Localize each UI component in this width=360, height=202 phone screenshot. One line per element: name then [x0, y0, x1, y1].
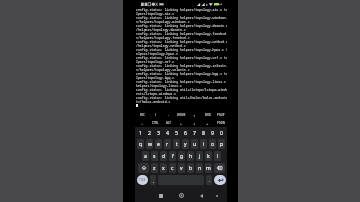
button[interactable]: c [169, 163, 176, 173]
staticText: d [162, 153, 166, 160]
staticText: config.status: linking helpers/topology-… [136, 48, 227, 52]
button[interactable]: o [209, 139, 216, 149]
staticText: PGDN [217, 121, 225, 125]
staticText: m [206, 165, 211, 172]
button[interactable]: ∼ [135, 119, 149, 127]
button[interactable]: 1 [136, 127, 145, 138]
staticText: . [209, 178, 210, 183]
staticText: config.status: linking helpers/topology-… [136, 8, 227, 12]
staticText: u [193, 141, 197, 148]
button[interactable] [138, 163, 149, 173]
button[interactable]: Home [176, 190, 187, 201]
staticText: config.status: linking helpers/topology-… [136, 32, 227, 36]
button[interactable]: ESC [135, 111, 149, 119]
button[interactable]: 2 [145, 127, 154, 138]
staticText: config.status: linking helpers/topology-… [136, 16, 227, 20]
button[interactable]: → [201, 119, 214, 127]
staticText: HOME [177, 113, 186, 117]
button[interactable]: PGDN [214, 119, 227, 127]
button[interactable]: y [182, 139, 189, 149]
button[interactable]: HOME [175, 111, 188, 119]
button[interactable]: ALT [162, 119, 175, 127]
staticText: CTRL [152, 121, 159, 125]
staticText: g [180, 153, 184, 160]
button[interactable]: 0 [217, 127, 226, 138]
staticText: s/helpers/topology-freebsd.c [136, 36, 190, 40]
button[interactable]: m [205, 163, 212, 173]
staticText: p [220, 141, 224, 148]
staticText: config.status: linking helpers/topology-… [136, 80, 227, 84]
button[interactable]: n [196, 163, 203, 173]
button[interactable]: d [160, 151, 167, 161]
staticText: ?123 [139, 178, 146, 182]
staticText: z [153, 165, 156, 172]
button[interactable]: q [137, 139, 144, 149]
button[interactable]: e [155, 139, 162, 149]
staticText: lpers/topology-aix.c [136, 12, 175, 16]
button[interactable]: ← [175, 119, 188, 127]
button[interactable]: Switch keyboard [211, 190, 222, 201]
staticText: 5 [175, 129, 178, 136]
button[interactable]: - [162, 111, 175, 119]
button[interactable]: PGUP [214, 111, 227, 119]
staticText: ↑ [193, 114, 196, 117]
staticText: 2 [148, 129, 151, 136]
button[interactable]: , [150, 175, 156, 185]
button[interactable]: f [169, 151, 176, 161]
staticText: s/helpers/topology-windows.c [136, 20, 190, 24]
button[interactable]: ?123 [137, 175, 148, 185]
staticText: 4 [166, 129, 169, 136]
button[interactable]: s [151, 151, 158, 161]
button[interactable]: Recents [155, 190, 166, 201]
button[interactable]: ↑ [188, 111, 201, 119]
staticText: y [184, 141, 187, 148]
staticText: lpers/topology-bgq.c [136, 76, 175, 80]
staticText: END [205, 113, 211, 117]
button[interactable]: p [218, 139, 225, 149]
button[interactable]: u [191, 139, 198, 149]
staticText: config.status: linking helpers/topology-… [136, 72, 227, 76]
button[interactable]: 6 [181, 127, 190, 138]
staticText: config.status: linking helpers/topology-… [136, 24, 227, 28]
button[interactable]: Back [196, 190, 207, 201]
button[interactable]: k [205, 151, 212, 161]
button[interactable]: l [214, 151, 221, 161]
button[interactable]: v [178, 163, 185, 173]
button[interactable]: . [206, 175, 212, 185]
button[interactable]: ↓ [188, 119, 201, 127]
staticText: w [148, 141, 152, 148]
button[interactable] [214, 163, 225, 173]
button[interactable]: 5 [172, 127, 181, 138]
staticText: helpers/topology-linux.c [136, 84, 182, 88]
staticText: /helpers/topology-darwin.c [136, 28, 186, 32]
button[interactable]: / [149, 111, 162, 119]
staticText: k [207, 153, 210, 160]
staticText: config.status: linking helpers/topology-… [136, 40, 227, 44]
button[interactable]: r [164, 139, 171, 149]
staticText: PGUP [217, 113, 225, 117]
button[interactable]: x [160, 163, 167, 173]
button[interactable]: z [151, 163, 158, 173]
button[interactable] [214, 175, 226, 185]
button[interactable]: END [201, 111, 214, 119]
button[interactable]: j [196, 151, 203, 161]
button[interactable]: 8 [199, 127, 208, 138]
button[interactable]: w [146, 139, 153, 149]
staticText: /helpers/topology-netbsd.c [136, 44, 186, 48]
button[interactable]: i [200, 139, 207, 149]
button[interactable]: 4 [163, 127, 172, 138]
button[interactable]: a [142, 151, 149, 161]
button[interactable]: 3 [154, 127, 163, 138]
staticText: ests/lstopo-windows.c [136, 92, 177, 96]
button[interactable]: t [173, 139, 180, 149]
button[interactable]: 9 [208, 127, 217, 138]
button[interactable]: b [187, 163, 194, 173]
button[interactable]: g [178, 151, 185, 161]
button[interactable]: h [187, 151, 194, 161]
button[interactable]: 7 [190, 127, 199, 138]
staticText: ALT [166, 121, 171, 125]
staticText: config.status: linking helpers/topology-… [136, 56, 227, 60]
staticText: 9 [211, 129, 214, 136]
button[interactable]: CTRL [149, 119, 162, 127]
